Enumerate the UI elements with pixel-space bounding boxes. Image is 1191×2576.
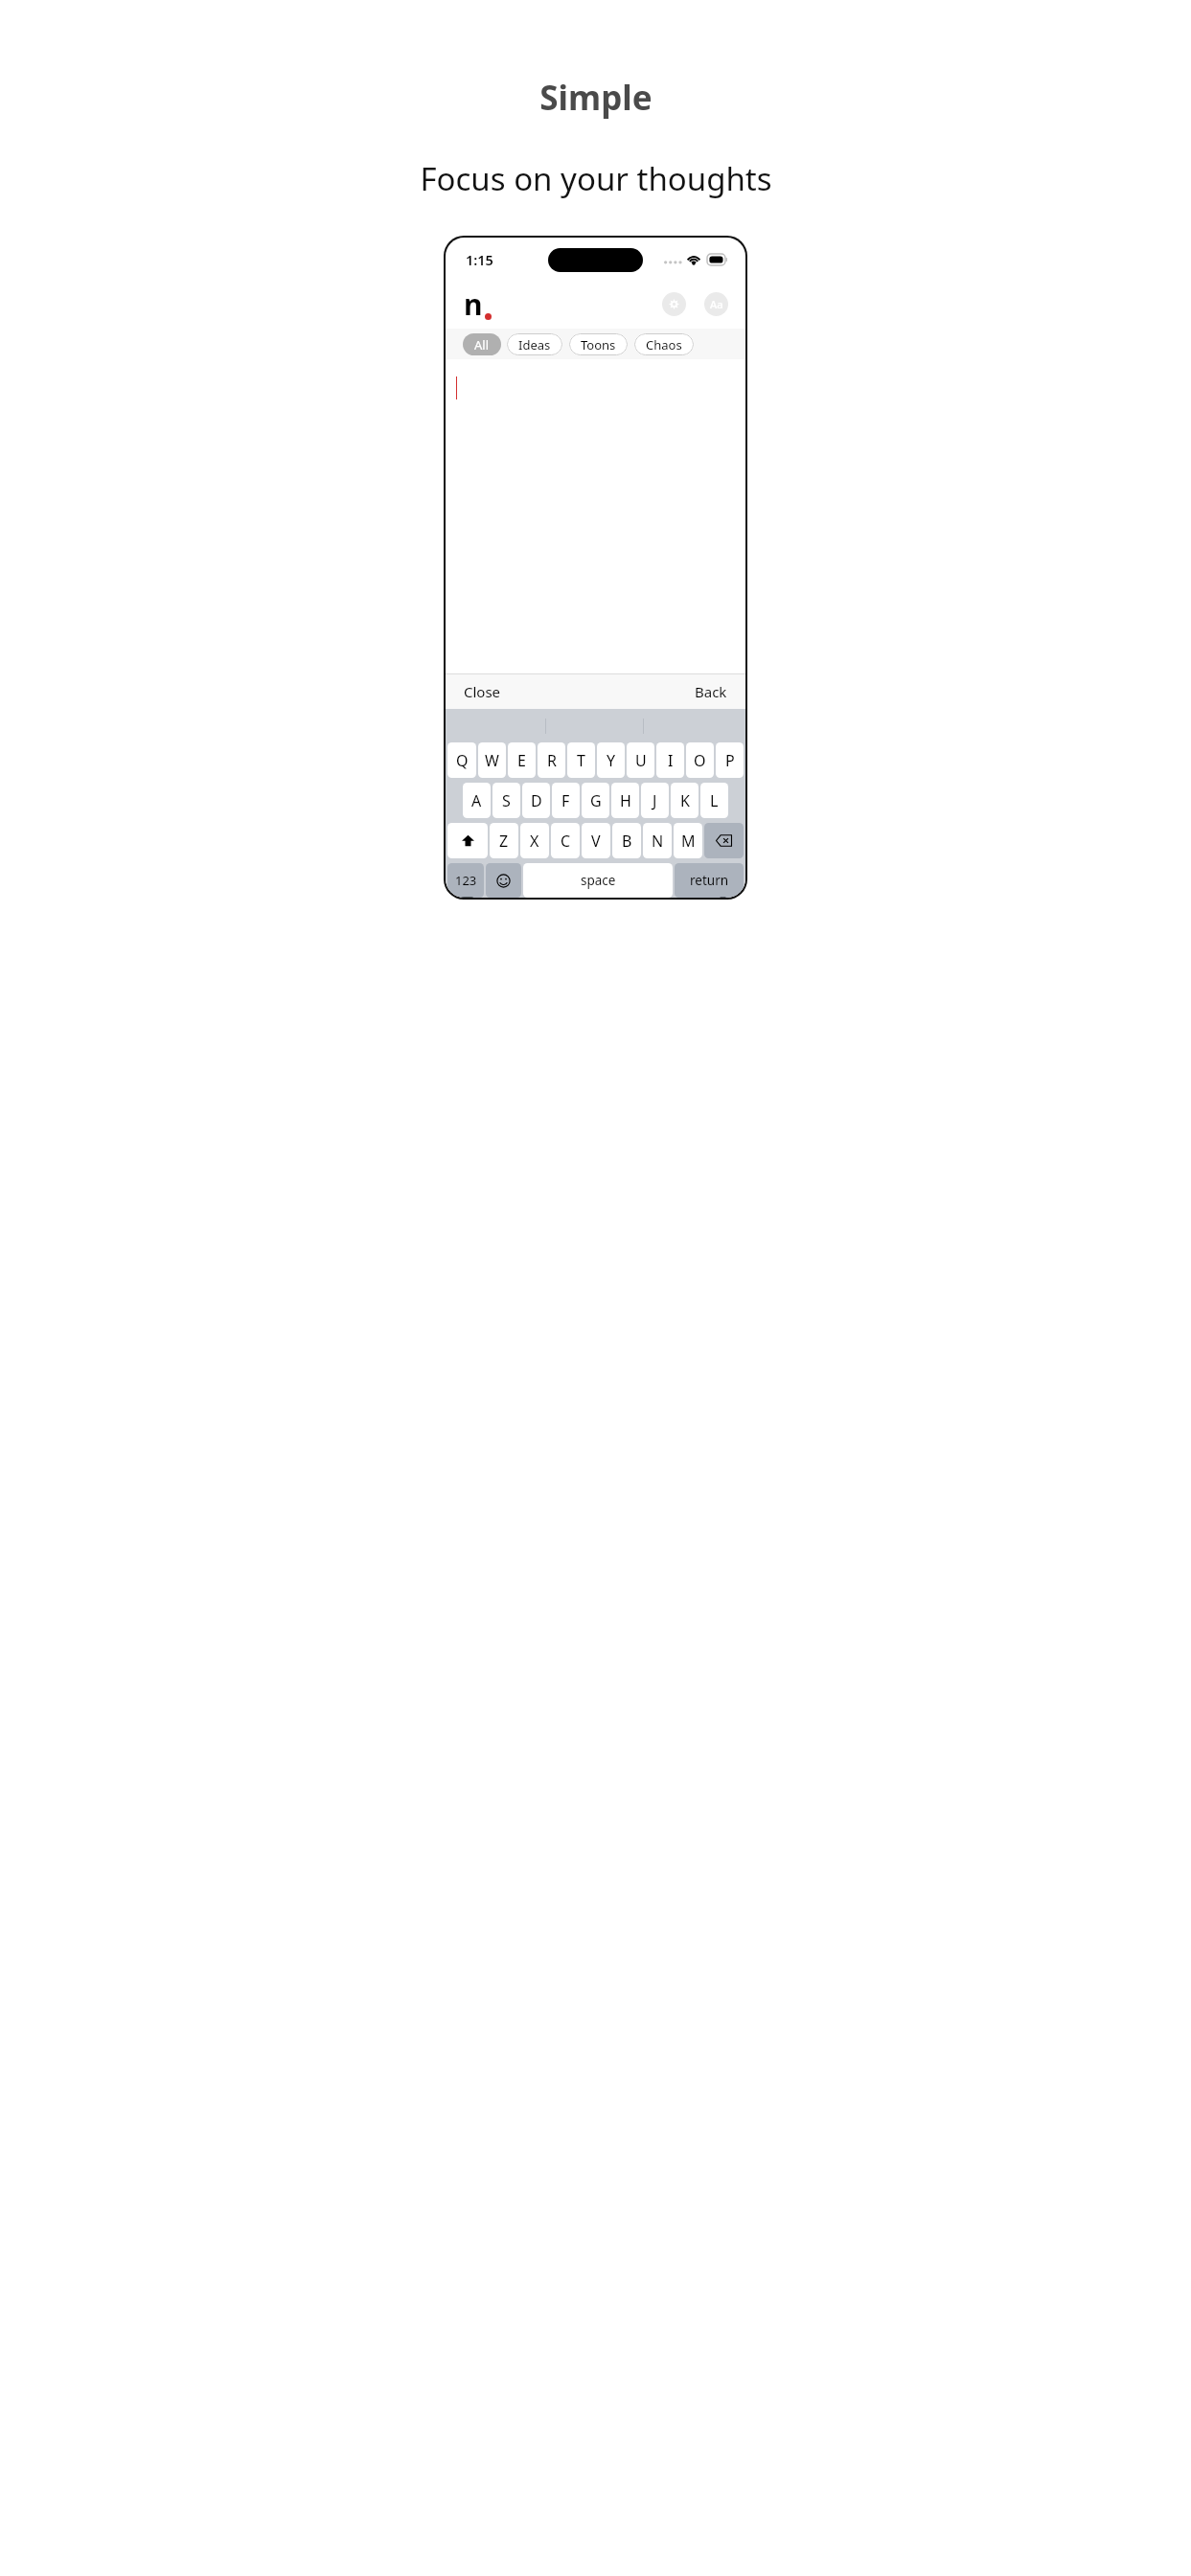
staticText: Focus on your thoughts	[420, 157, 772, 200]
button[interactable]: Back	[676, 675, 745, 708]
button[interactable]: S	[492, 783, 520, 818]
staticText: B	[622, 831, 632, 852]
staticText: F	[561, 790, 570, 811]
button[interactable]: R	[538, 742, 565, 778]
staticText: K	[680, 790, 690, 811]
button[interactable]: Close	[446, 675, 519, 708]
staticText: V	[591, 831, 601, 852]
button[interactable]: W	[478, 742, 506, 778]
button[interactable]: O	[686, 742, 714, 778]
staticText: J	[653, 790, 657, 811]
staticText: 123	[455, 872, 477, 889]
button[interactable]: Text size	[704, 292, 728, 316]
button[interactable]: Chaos	[634, 333, 694, 355]
staticText: X	[530, 831, 539, 852]
button[interactable]: X	[520, 823, 549, 858]
button[interactable]: E	[508, 742, 536, 778]
button[interactable]: Shift	[447, 823, 488, 858]
staticText: return	[690, 872, 729, 889]
staticText: H	[620, 790, 631, 811]
button[interactable]: All	[463, 333, 501, 355]
staticText: D	[531, 790, 542, 811]
staticText: Ideas	[518, 336, 551, 353]
staticText: R	[547, 750, 557, 771]
button[interactable]: T	[567, 742, 595, 778]
staticText: G	[590, 790, 602, 811]
button[interactable]: Y	[597, 742, 625, 778]
button[interactable]: Emoji	[486, 863, 521, 898]
staticText: A	[471, 790, 482, 811]
staticText: U	[635, 750, 647, 771]
staticText: P	[725, 750, 735, 771]
button[interactable]: Z	[490, 823, 518, 858]
staticText: Close	[464, 682, 501, 701]
staticText: E	[517, 750, 526, 771]
staticText: Q	[456, 750, 469, 771]
staticText: N	[652, 831, 664, 852]
button[interactable]: Toons	[569, 333, 628, 355]
button[interactable]: A	[463, 783, 491, 818]
staticText: I	[668, 750, 674, 771]
button[interactable]: V	[582, 823, 610, 858]
staticText: Toons	[581, 336, 616, 353]
button[interactable]: L	[700, 783, 728, 818]
staticText: n	[464, 285, 483, 324]
staticText: C	[561, 831, 571, 852]
button[interactable]: I	[656, 742, 684, 778]
button[interactable]: space	[523, 863, 673, 898]
staticText: L	[710, 790, 719, 811]
button[interactable]: B	[612, 823, 641, 858]
staticText: space	[581, 872, 616, 889]
button[interactable]: C	[551, 823, 580, 858]
button[interactable]: Backspace	[704, 823, 744, 858]
staticText: Back	[695, 682, 727, 701]
staticText: S	[502, 790, 511, 811]
button[interactable]: U	[627, 742, 654, 778]
button[interactable]: P	[716, 742, 744, 778]
button[interactable]: G	[582, 783, 609, 818]
staticText: Chaos	[646, 336, 682, 353]
staticText: T	[577, 750, 585, 771]
button[interactable]: 123	[447, 863, 484, 898]
button[interactable]: Settings	[662, 292, 686, 316]
button[interactable]: F	[552, 783, 580, 818]
button[interactable]: K	[671, 783, 699, 818]
button[interactable]: Q	[447, 742, 476, 778]
staticText: Simple	[539, 75, 653, 121]
staticText: 1:15	[466, 250, 493, 269]
staticText: Aa	[710, 297, 723, 311]
button[interactable]: N	[643, 823, 672, 858]
button[interactable]: M	[674, 823, 702, 858]
staticText: M	[681, 831, 696, 852]
staticText: O	[694, 750, 706, 771]
staticText: Y	[607, 750, 616, 771]
button[interactable]: J	[641, 783, 669, 818]
button[interactable]: return	[675, 863, 744, 898]
button[interactable]: H	[611, 783, 639, 818]
staticText: W	[485, 750, 499, 771]
button[interactable]: Ideas	[507, 333, 562, 355]
staticText: Z	[499, 831, 509, 852]
button[interactable]: D	[522, 783, 550, 818]
staticText: All	[474, 336, 490, 353]
